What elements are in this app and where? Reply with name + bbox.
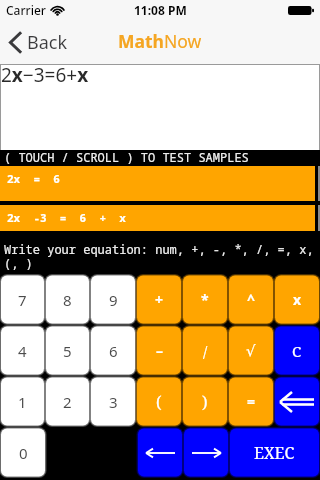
staticText: √ bbox=[246, 342, 256, 359]
staticText: 4 bbox=[18, 341, 27, 361]
staticText: C bbox=[292, 341, 302, 361]
button[interactable]: 7 bbox=[0, 274, 45, 325]
button[interactable]: 2x = 6 bbox=[0, 166, 315, 201]
button[interactable]: – bbox=[136, 325, 182, 376]
staticText: 0 bbox=[19, 443, 28, 463]
staticText: 7 bbox=[18, 290, 27, 310]
button[interactable]: Backspace bbox=[274, 376, 320, 427]
button[interactable]: √ bbox=[228, 325, 274, 376]
staticText: 1 bbox=[18, 392, 27, 412]
button[interactable]: Move right bbox=[183, 427, 229, 478]
button[interactable]: ^ bbox=[228, 274, 274, 325]
button[interactable]: 0 bbox=[0, 427, 46, 478]
staticText: = bbox=[247, 392, 256, 411]
staticText: 11:08 PM bbox=[134, 2, 187, 18]
staticText: 2x−3=6+x bbox=[1, 62, 89, 88]
staticText: MathNow bbox=[118, 29, 202, 53]
staticText: 2x -3 = 6 + x bbox=[7, 210, 126, 225]
staticText: EXEC bbox=[254, 442, 295, 464]
staticText: 9 bbox=[109, 290, 118, 310]
staticText: 5 bbox=[63, 341, 72, 361]
button[interactable]: EXEC bbox=[229, 427, 320, 478]
staticText: / bbox=[203, 341, 208, 361]
button[interactable]: 1 bbox=[0, 376, 45, 427]
staticText: ( bbox=[156, 391, 162, 413]
button[interactable]: ) bbox=[182, 376, 228, 427]
button[interactable]: Back bbox=[9, 24, 68, 60]
button[interactable]: 2 bbox=[45, 376, 90, 427]
button[interactable]: x bbox=[274, 274, 320, 325]
button[interactable]: Move left bbox=[137, 427, 183, 478]
button[interactable]: 6 bbox=[90, 325, 136, 376]
button[interactable]: 2x -3 = 6 + x bbox=[0, 205, 315, 231]
staticText: * bbox=[201, 290, 209, 309]
button[interactable]: / bbox=[182, 325, 228, 376]
staticText: 2 bbox=[63, 392, 72, 412]
button[interactable]: 8 bbox=[45, 274, 90, 325]
button[interactable]: 3 bbox=[90, 376, 136, 427]
staticText: – bbox=[156, 341, 163, 360]
staticText: 8 bbox=[63, 290, 72, 310]
button[interactable]: 9 bbox=[90, 274, 136, 325]
button[interactable]: * bbox=[182, 274, 228, 325]
button[interactable]: 5 bbox=[45, 325, 90, 376]
button[interactable]: ( bbox=[136, 376, 182, 427]
staticText: 3 bbox=[109, 392, 118, 412]
button[interactable]: = bbox=[228, 376, 274, 427]
button[interactable]: 4 bbox=[0, 325, 45, 376]
staticText: ^ bbox=[247, 290, 256, 309]
staticText: Write your equation: num, +, -, *, /, =,… bbox=[4, 241, 314, 271]
staticText: 2x = 6 bbox=[7, 171, 60, 186]
staticText: x bbox=[293, 290, 302, 309]
button[interactable]: + bbox=[136, 274, 182, 325]
staticText: Carrier bbox=[6, 2, 46, 18]
staticText: 6 bbox=[109, 341, 118, 361]
button[interactable]: C bbox=[274, 325, 320, 376]
staticText: + bbox=[155, 290, 164, 309]
staticText: ( TOUCH / SCROLL ) TO TEST SAMPLES bbox=[4, 149, 249, 165]
staticText: ) bbox=[202, 391, 208, 413]
staticText: Back bbox=[27, 30, 68, 55]
